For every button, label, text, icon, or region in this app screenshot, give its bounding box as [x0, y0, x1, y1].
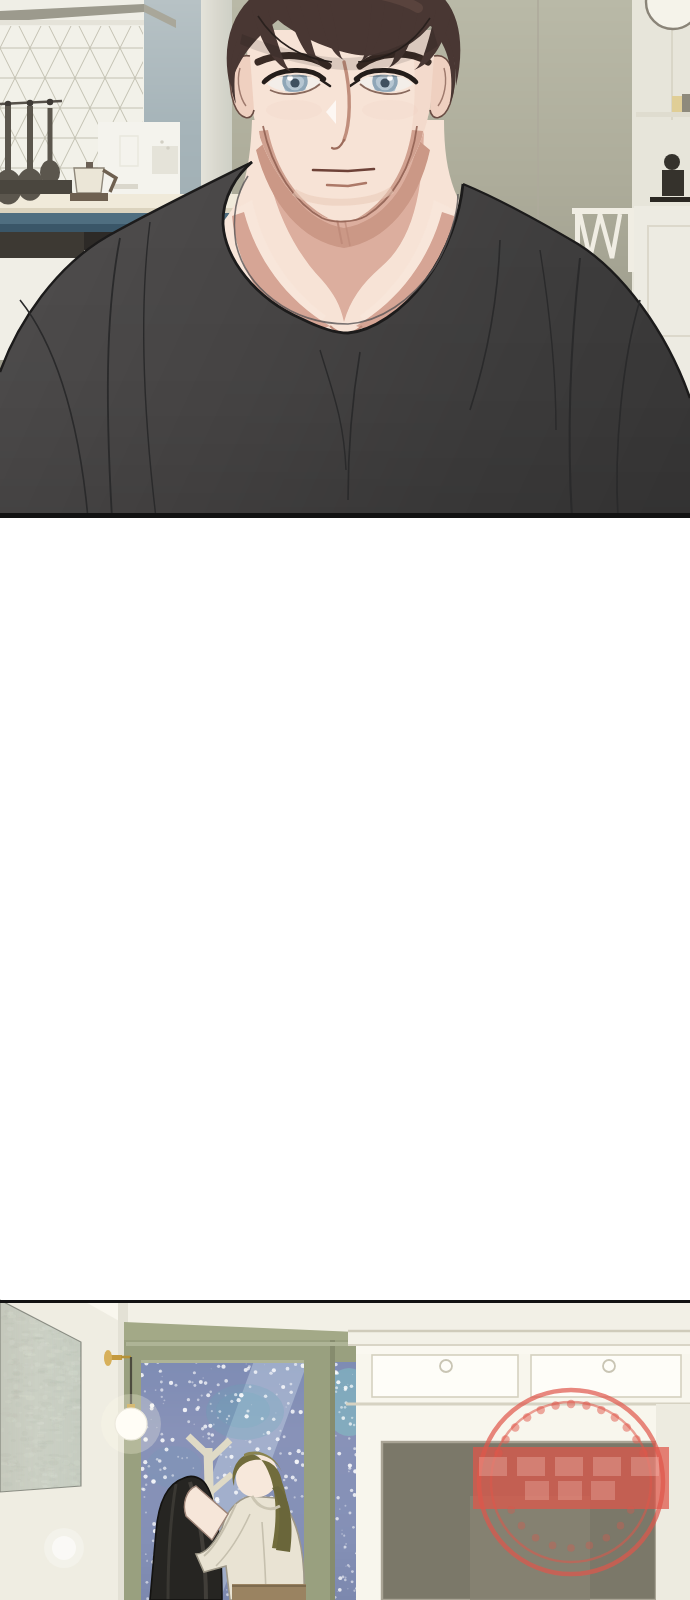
- button[interactable]: Episode panel 2: [0, 1300, 690, 1600]
- button[interactable]: Episode panel 1: [0, 0, 690, 518]
